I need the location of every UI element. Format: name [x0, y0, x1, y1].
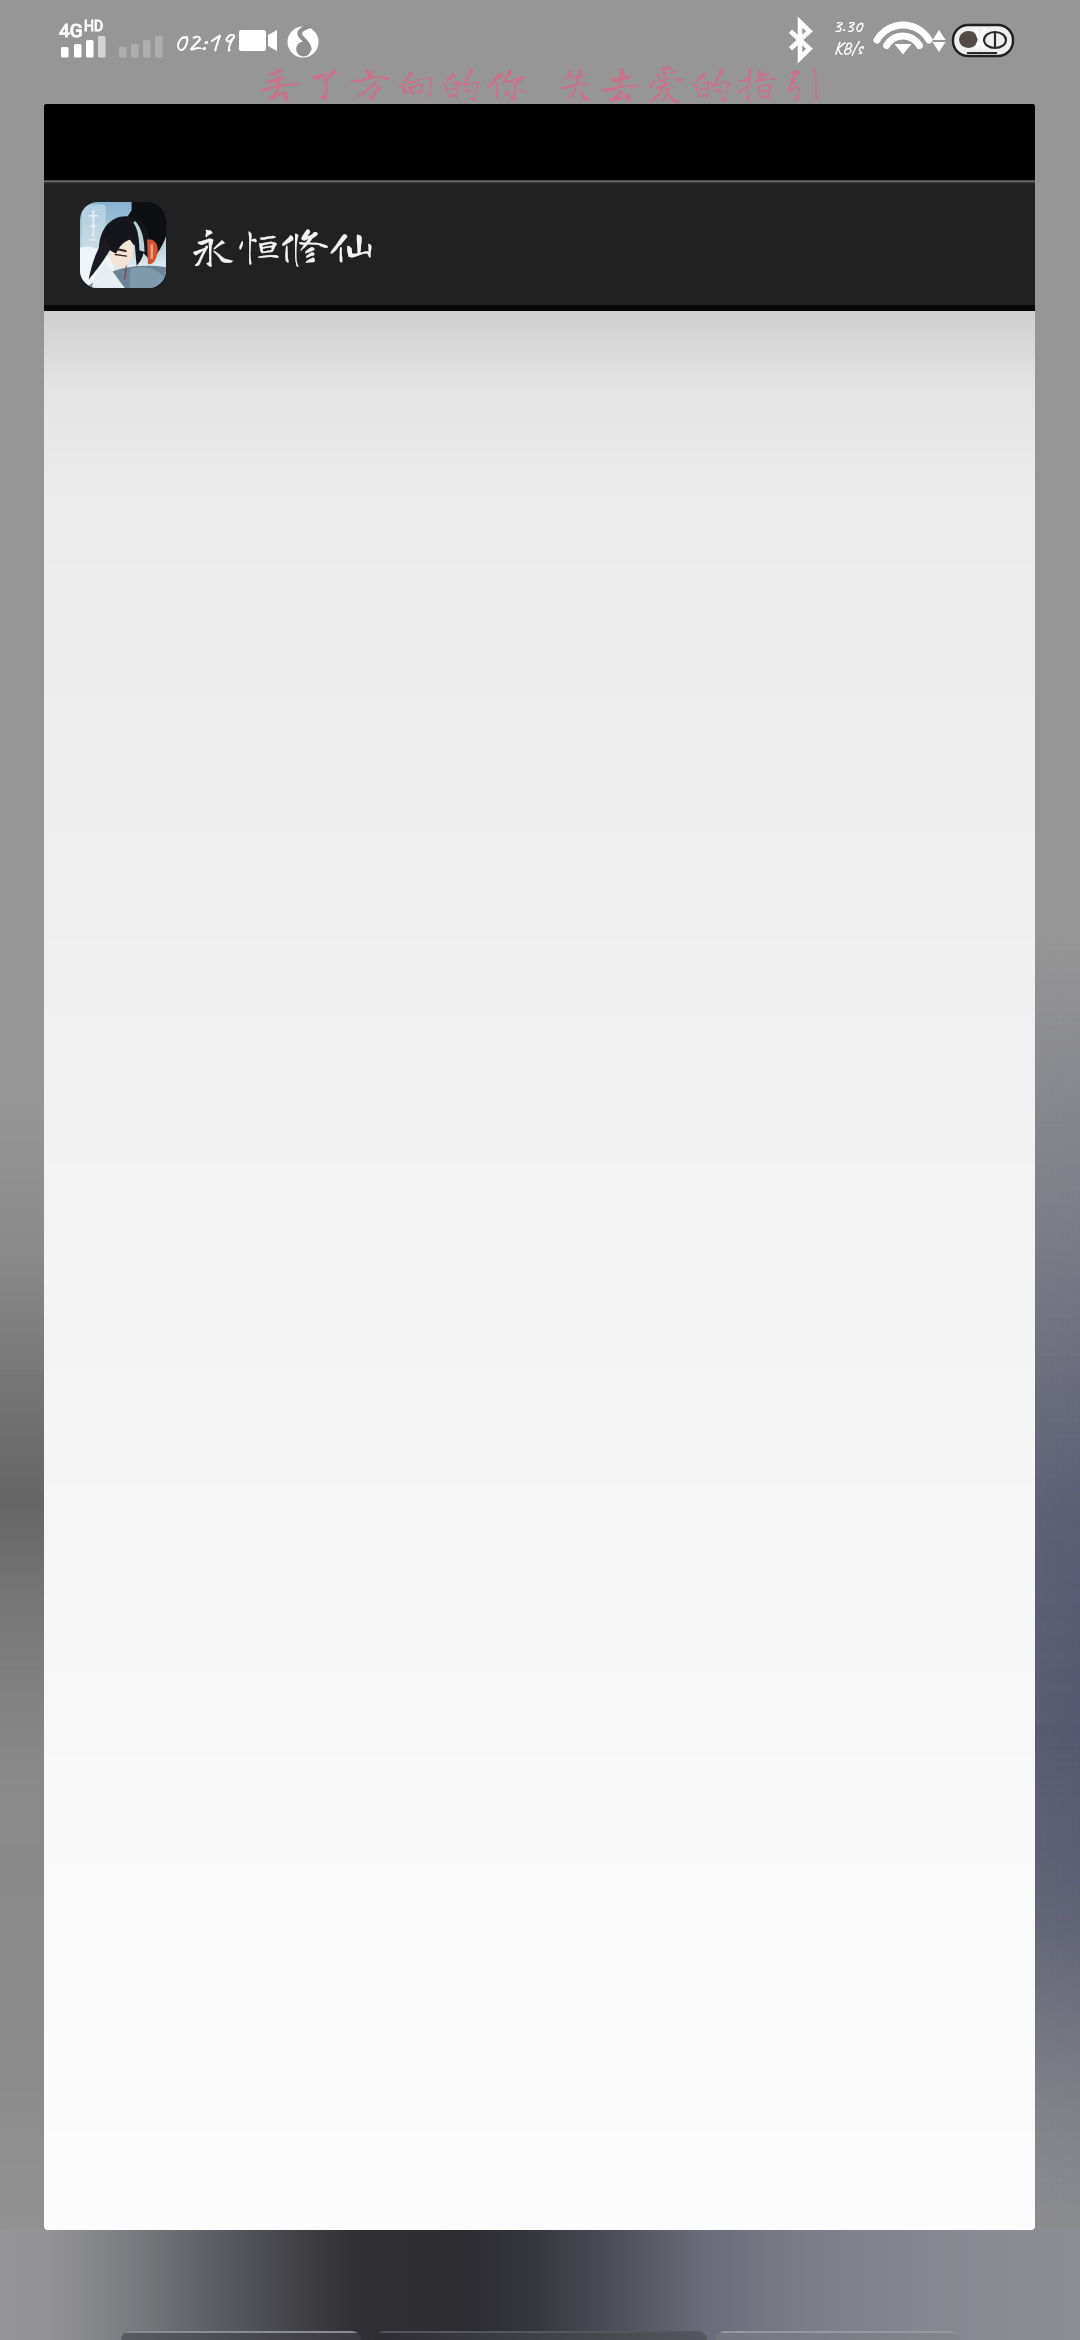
button[interactable]: Recent task: [375, 2331, 707, 2340]
button[interactable]: 永恒修仙 app icon: [44, 104, 1035, 2230]
staticText: 3.30: [833, 14, 863, 38]
staticText: 02:19: [173, 22, 233, 60]
button[interactable]: Recent task: [716, 2331, 960, 2340]
staticText: 永恒修仙: [190, 222, 374, 268]
button[interactable]: Recent task: [121, 2331, 361, 2340]
staticText: KB/s: [834, 38, 863, 59]
staticText: 4G: [59, 19, 83, 41]
other: 永恒修仙 app icon: [80, 202, 166, 288]
staticText: 丢了方向的你 失去爱的指引: [257, 59, 826, 103]
staticText: HD: [84, 18, 104, 34]
